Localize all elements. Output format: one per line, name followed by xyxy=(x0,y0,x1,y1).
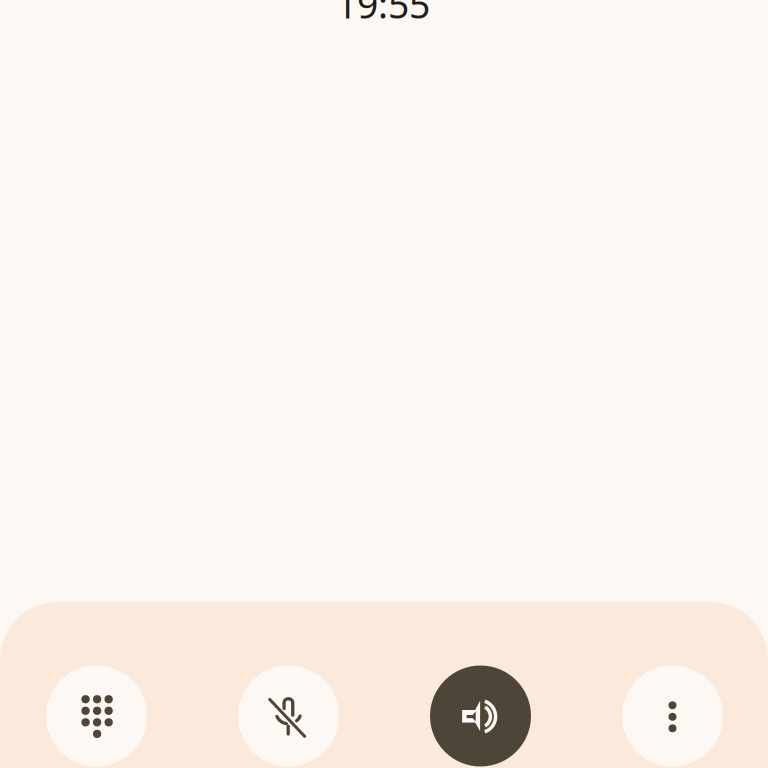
staticText: 19:55 xyxy=(336,0,430,29)
button[interactable]: Unmute xyxy=(238,665,339,766)
button[interactable]: More options xyxy=(622,665,723,766)
button[interactable]: Keypad xyxy=(46,665,147,766)
button[interactable]: Speaker xyxy=(430,665,531,766)
